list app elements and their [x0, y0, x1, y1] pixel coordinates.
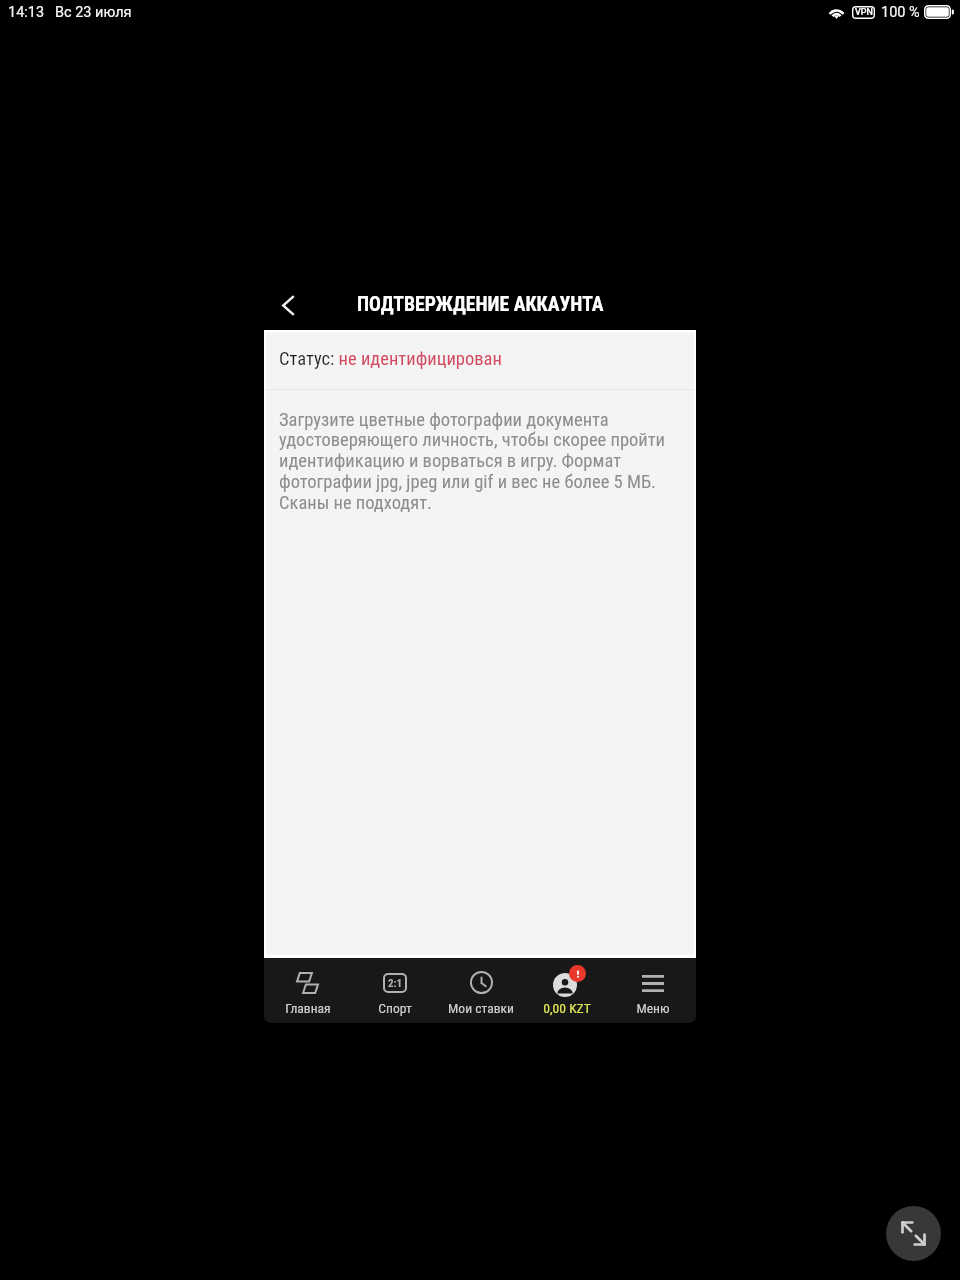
staticText: Загрузите цветные фотографии документа у…: [279, 409, 668, 514]
button[interactable]: Развернуть на весь экран: [886, 1206, 941, 1261]
button[interactable]: Меню: [610, 958, 696, 1023]
button[interactable]: Назад: [267, 284, 309, 326]
button[interactable]: Мои ставки: [438, 958, 524, 1023]
staticText: 0,00 KZT: [543, 1000, 591, 1016]
staticText: 2:1: [388, 977, 403, 990]
button[interactable]: Статус: не идентифицирован: [279, 332, 694, 389]
staticText: Вс 23 июля: [55, 4, 132, 21]
staticText: Мои ставки: [448, 1000, 514, 1016]
staticText: ПОДТВЕРЖДЕНИЕ АККАУНТА: [357, 293, 604, 316]
staticText: Меню: [636, 1000, 670, 1016]
staticText: Статус: не идентифицирован: [279, 348, 502, 370]
button[interactable]: 0,00 KZT: [524, 958, 610, 1023]
staticText: 14:13: [8, 4, 45, 21]
staticText: Спорт: [378, 1000, 412, 1016]
staticText: 100 %: [881, 4, 920, 21]
staticText: VPN: [855, 7, 873, 18]
button[interactable]: 2:1: [351, 958, 438, 1023]
button[interactable]: Главная: [264, 958, 351, 1023]
staticText: Главная: [285, 1000, 331, 1016]
